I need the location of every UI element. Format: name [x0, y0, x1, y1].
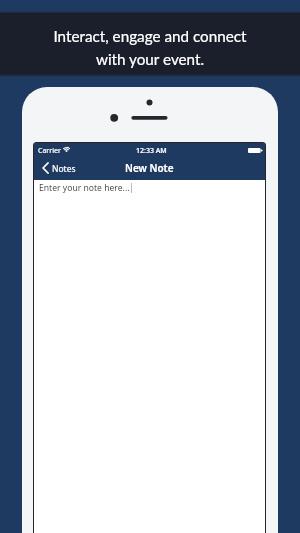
button[interactable]: Back — [34, 160, 82, 178]
staticText: Notes — [52, 163, 76, 175]
staticText: Interact, engage and connect with your e… — [53, 27, 247, 68]
staticText: Carrier — [38, 146, 61, 156]
button[interactable]: Enter your note here... — [34, 180, 265, 533]
staticText: New Note — [125, 161, 174, 175]
staticText: 12:33 AM — [136, 146, 167, 156]
staticText: Enter your note here... — [39, 182, 130, 194]
other: Back — [42, 162, 49, 174]
